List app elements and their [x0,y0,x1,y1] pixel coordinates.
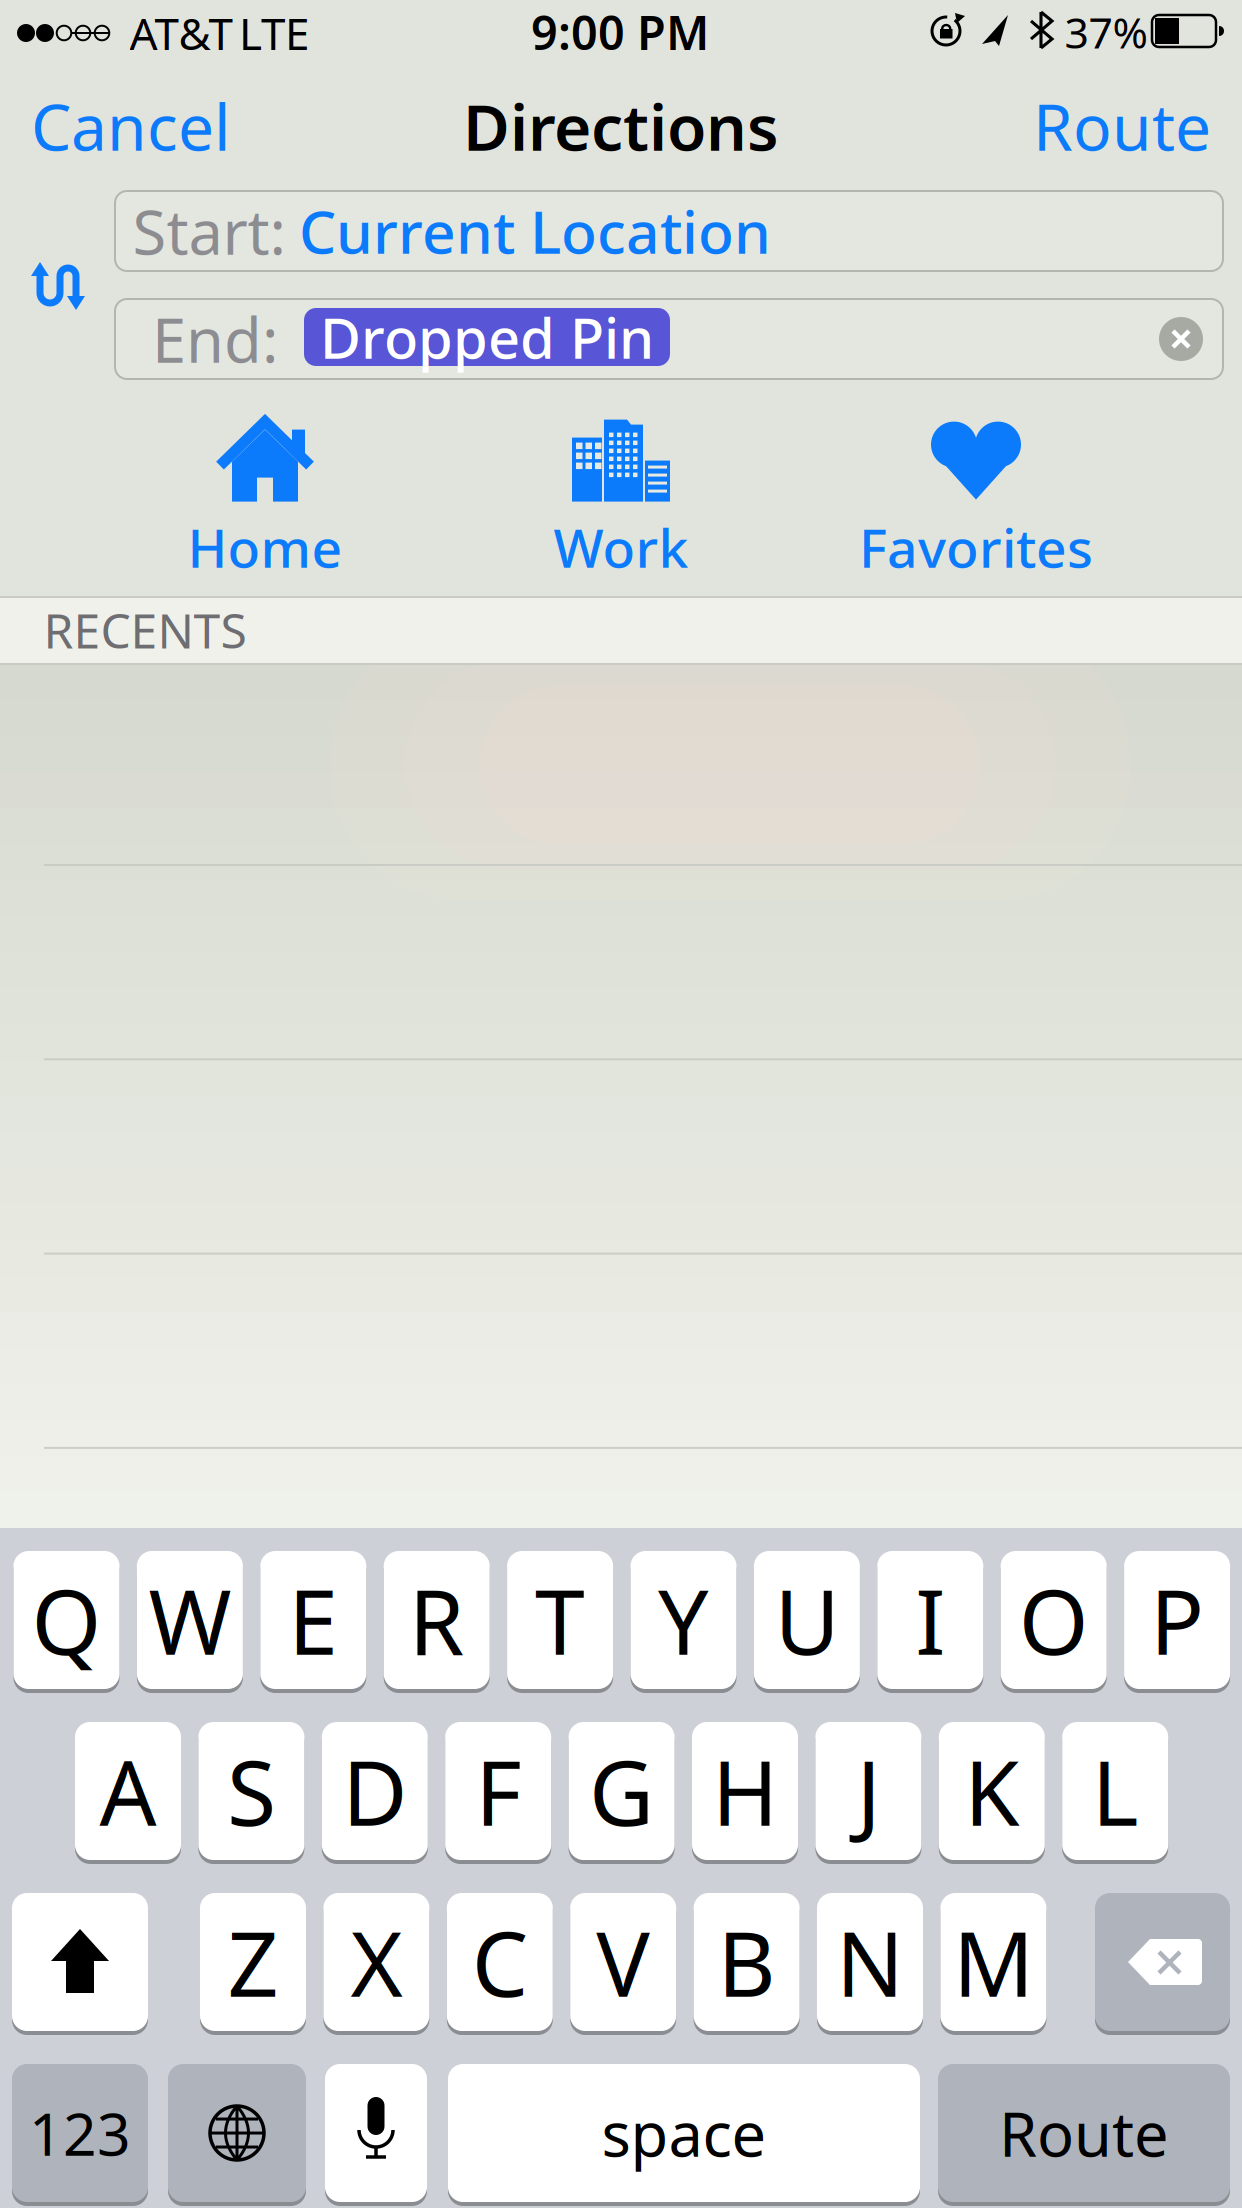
button[interactable]: U [754,1549,860,1691]
staticText: G [589,1732,654,1850]
staticText: T [535,1561,585,1679]
button[interactable]: F [445,1720,551,1862]
staticText: 9:00 PM [531,1,709,63]
button[interactable]: H [692,1720,798,1862]
button[interactable]: B [694,1891,800,2033]
button[interactable]: I [877,1549,983,1691]
button[interactable]: G [569,1720,675,1862]
button[interactable]: V [570,1891,676,2033]
button[interactable]: Work [553,418,688,582]
staticText: Z [227,1903,278,2021]
button[interactable]: P [1124,1549,1230,1691]
staticText: K [964,1732,1019,1850]
button[interactable]: End: Dropped Pin [115,299,1223,379]
button[interactable]: L [1062,1720,1168,1862]
button[interactable]: Dictation [325,2062,427,2204]
button[interactable]: 123 [12,2062,148,2204]
button[interactable]: S [198,1720,304,1862]
staticText: LTE [239,4,309,62]
staticText: F [475,1732,521,1850]
button[interactable]: Y [630,1549,736,1691]
staticText: W [148,1561,231,1679]
button[interactable]: J [815,1720,921,1862]
staticText: Cancel [31,83,231,168]
button[interactable]: Clear end field [1159,317,1203,361]
staticText: O [1019,1561,1089,1679]
button[interactable]: space [448,2062,920,2204]
staticText: V [596,1903,650,2021]
staticText: Q [31,1561,101,1679]
button[interactable]: M [940,1891,1046,2033]
staticText: N [836,1903,904,2021]
staticText: Current Location [299,192,771,270]
button[interactable]: Delete [1095,1891,1230,2033]
button[interactable]: Next keyboard [168,2062,306,2204]
staticText: Dropped Pin [320,300,654,374]
button[interactable]: D [322,1720,428,1862]
staticText: Start: [132,190,285,272]
button[interactable]: X [323,1891,429,2033]
staticText: S [227,1732,276,1850]
button[interactable]: Home [187,418,342,582]
button[interactable]: C [447,1891,553,2033]
staticText: Home [187,512,342,582]
button[interactable]: Route [1033,83,1211,168]
staticText: P [1150,1561,1204,1679]
staticText: L [1092,1732,1139,1850]
button[interactable]: K [939,1720,1045,1862]
button[interactable]: Shift [12,1891,148,2033]
staticText: Route [1033,83,1211,168]
staticText: I [915,1561,945,1679]
staticText: R [409,1561,465,1679]
button[interactable]: Z [200,1891,306,2033]
button[interactable]: T [507,1549,613,1691]
staticText: Route [999,2092,1169,2174]
staticText: D [342,1732,407,1850]
button[interactable]: Swap start and end [27,257,87,317]
button[interactable]: W [137,1549,243,1691]
staticText: H [712,1732,778,1850]
button[interactable]: A [75,1720,181,1862]
staticText: RECENTS [43,598,246,662]
button[interactable]: Start: Current Location [115,191,1223,271]
staticText: 37% [1064,4,1147,60]
staticText: 123 [29,2094,131,2172]
staticText: End: [152,298,278,380]
button[interactable]: N [817,1891,923,2033]
staticText: space [601,2092,766,2174]
staticText: C [472,1903,528,2021]
staticText: Directions [463,83,779,168]
staticText: Work [553,512,688,582]
button[interactable]: Cancel [31,83,231,168]
staticText: Favorites [859,512,1093,582]
staticText: A [99,1732,156,1850]
staticText: E [288,1561,338,1679]
button[interactable]: O [1001,1549,1107,1691]
staticText: X [350,1903,402,2021]
staticText: Y [658,1561,709,1679]
staticText: U [774,1561,839,1679]
staticText: B [718,1903,776,2021]
button[interactable]: E [260,1549,366,1691]
button[interactable]: R [384,1549,490,1691]
staticText: J [856,1732,880,1850]
button[interactable]: Q [13,1549,119,1691]
button[interactable]: Route [938,2062,1230,2204]
button[interactable]: Favorites [859,418,1093,582]
staticText: AT&T [129,4,232,62]
staticText: M [953,1903,1034,2021]
